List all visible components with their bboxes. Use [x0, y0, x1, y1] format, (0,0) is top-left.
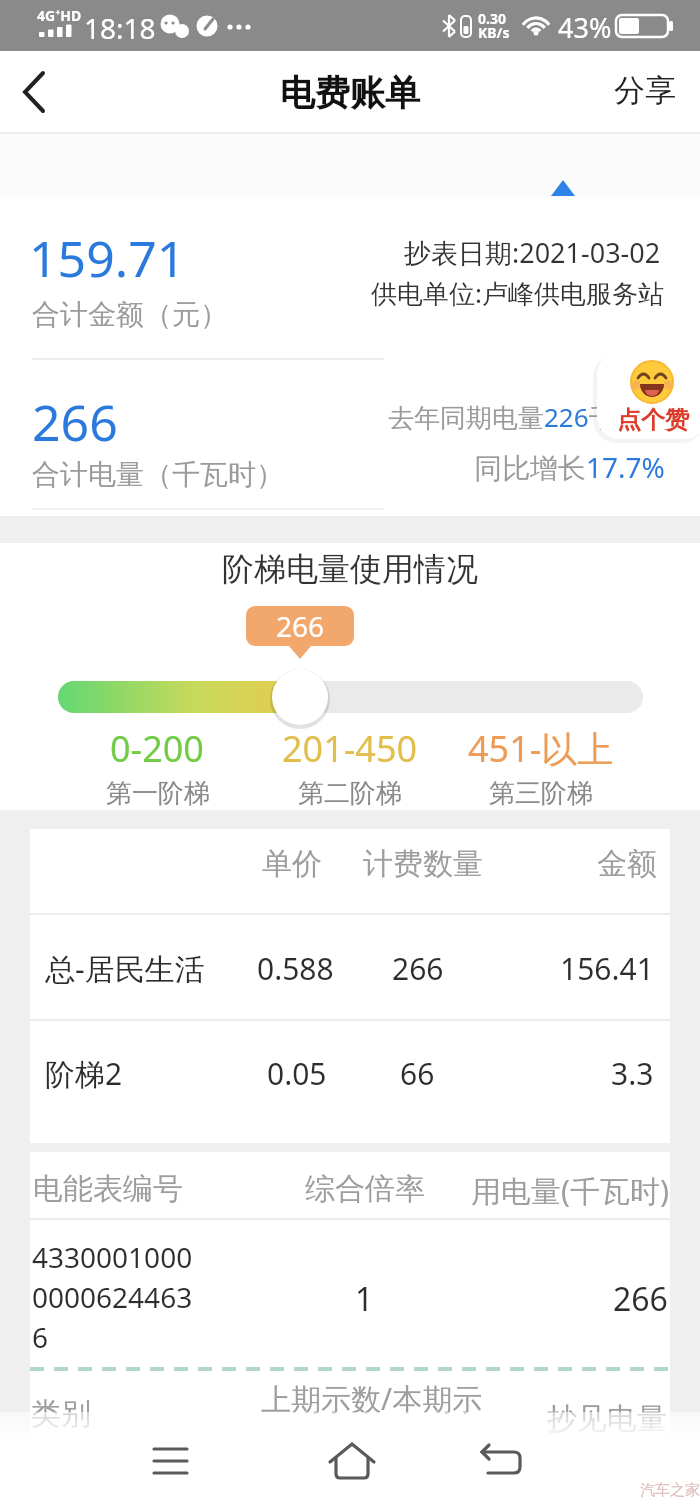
staticText: 分享 [614, 71, 676, 110]
staticText: 266 [32, 388, 118, 456]
staticText: 266 [613, 1277, 668, 1321]
staticText: 266 [276, 607, 325, 645]
staticText: 第三阶梯 [489, 777, 593, 810]
staticText: 159.71 [29, 224, 186, 292]
staticText: 综合倍率 [305, 1170, 425, 1208]
staticText: 43% [558, 9, 612, 46]
staticText: 合计电量（千瓦时） [32, 457, 284, 492]
staticText: 阶梯电量使用情况 [222, 549, 478, 589]
staticText: 451-以上 [468, 724, 614, 773]
staticText: 0-200 [110, 724, 204, 773]
button[interactable] [307, 1430, 397, 1490]
staticText: 3.3 [611, 1053, 654, 1094]
button[interactable]: 266 [246, 606, 354, 646]
staticText: 上期示数/本期示 [261, 1378, 483, 1419]
staticText: KB/s [478, 23, 510, 42]
staticText: 抄见电量 [547, 1400, 667, 1438]
staticText: 4G⁺HD [37, 6, 82, 25]
staticText: 66 [400, 1053, 435, 1094]
staticText: 单价 [262, 845, 322, 883]
staticText: 4330001000 0000624463 6 [32, 1238, 193, 1357]
staticText: 类别 [31, 1395, 91, 1433]
staticText: 0.588 [257, 948, 334, 989]
staticText: 第二阶梯 [298, 777, 402, 810]
staticText: 电能表编号 [33, 1170, 183, 1208]
staticText: 第一阶梯 [106, 777, 210, 810]
staticText: 抄表日期:2021-03-02 [404, 234, 661, 271]
button[interactable] [12, 62, 68, 122]
staticText: 266 [392, 948, 444, 989]
staticText: 点个赞 [617, 405, 689, 435]
staticText: 去年同期电量226千瓦时 [388, 399, 667, 435]
staticText: 电费账单 [280, 71, 420, 115]
staticText: 同比增长17.7% [474, 448, 665, 486]
staticText: 阶梯2 [45, 1053, 123, 1094]
staticText: 汽车之家 [640, 1481, 700, 1500]
staticText: 201-450 [282, 724, 418, 773]
button[interactable] [272, 669, 328, 725]
button[interactable]: 点个赞 [597, 352, 700, 439]
staticText: 计费数量 [363, 845, 483, 883]
staticText: 用电量(千瓦时) [471, 1170, 669, 1211]
staticText: 156.41 [560, 948, 654, 989]
staticText: 1 [355, 1277, 374, 1321]
button[interactable] [130, 1430, 220, 1490]
staticText: 金额 [597, 845, 657, 883]
staticText: 18:18 [84, 9, 156, 47]
staticText: 合计金额（元） [32, 297, 228, 332]
staticText: 总-居民生活 [45, 948, 205, 989]
button[interactable] [455, 1430, 545, 1490]
staticText: 0.05 [267, 1053, 327, 1094]
button[interactable]: 分享 [600, 65, 690, 115]
staticText: 供电单位:卢峰供电服务站 [371, 275, 664, 311]
staticText: 0.30 [478, 9, 506, 28]
